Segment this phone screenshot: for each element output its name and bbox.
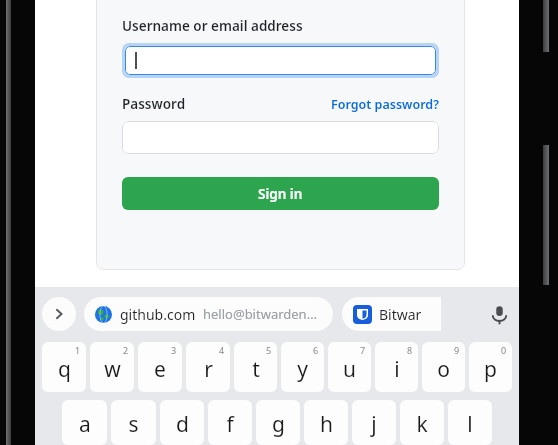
button[interactable]: h (304, 400, 348, 445)
button[interactable]: Voice input (479, 296, 519, 332)
button[interactable]: k (400, 400, 444, 445)
staticText: 6 (313, 344, 319, 356)
staticText: 7 (360, 344, 366, 356)
button[interactable]: d (160, 400, 204, 445)
button[interactable]: Bitwar (342, 297, 441, 331)
button[interactable]: e (138, 342, 182, 392)
staticText: 1 (75, 344, 81, 356)
staticText: hello@bitwarden… (203, 305, 317, 323)
staticText: w (104, 355, 121, 384)
staticText: Forgot password? (331, 96, 439, 113)
staticText: 8 (407, 344, 413, 356)
button[interactable]: i (375, 342, 418, 392)
button[interactable]: Forgot password? (331, 96, 439, 113)
staticText: Username or email address (122, 17, 303, 35)
staticText: 2 (123, 344, 129, 356)
staticText: Bitwar (379, 305, 422, 324)
button[interactable]: u (328, 342, 371, 392)
button[interactable]: p (469, 342, 512, 392)
staticText: l (467, 410, 473, 439)
staticText: q (58, 355, 71, 384)
button[interactable]: f (208, 400, 252, 445)
button[interactable]: a (62, 400, 107, 445)
button[interactable]: s (111, 400, 156, 445)
staticText: Sign in (258, 185, 303, 203)
button[interactable]: t (234, 342, 277, 392)
staticText: j (371, 410, 377, 439)
staticText: y (297, 355, 308, 384)
staticText: h (320, 410, 333, 439)
button[interactable]: l (448, 400, 492, 445)
staticText: 0 (501, 344, 507, 356)
staticText: github.com (120, 305, 196, 324)
staticText: d (176, 410, 189, 439)
button[interactable]: r (186, 342, 230, 392)
staticText: r (204, 355, 213, 384)
staticText: o (437, 355, 450, 384)
staticText: Password (122, 95, 186, 113)
button[interactable]: y (281, 342, 324, 392)
staticText: p (484, 355, 497, 384)
staticText: 5 (266, 344, 272, 356)
staticText: e (154, 355, 166, 384)
staticText: 9 (454, 344, 460, 356)
staticText: k (416, 410, 428, 439)
button[interactable]: github.com (84, 297, 333, 331)
button[interactable]: o (422, 342, 465, 392)
staticText: a (79, 410, 91, 439)
staticText: s (128, 410, 139, 439)
button[interactable]: Sign in (122, 177, 439, 210)
button[interactable]: Expand autofill suggestions (42, 297, 76, 331)
button[interactable]: j (352, 400, 396, 445)
staticText: u (343, 355, 356, 384)
staticText: i (394, 355, 400, 384)
button[interactable]: w (90, 342, 134, 392)
staticText: f (226, 410, 234, 439)
staticText: t (252, 355, 260, 384)
staticText: 3 (171, 344, 177, 356)
button[interactable] (122, 43, 439, 78)
staticText: 4 (219, 344, 225, 356)
button[interactable]: q (42, 342, 86, 392)
staticText: g (272, 410, 285, 439)
button[interactable] (122, 121, 439, 154)
button[interactable]: g (256, 400, 300, 445)
